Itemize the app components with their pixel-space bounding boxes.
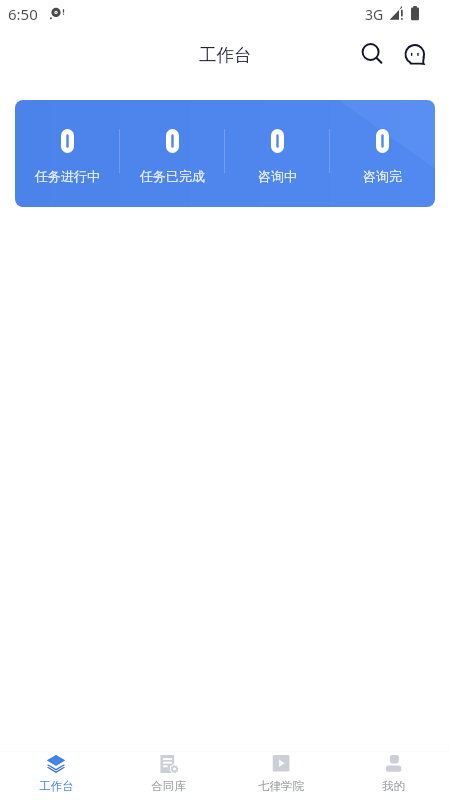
staticText: 我的 bbox=[382, 779, 405, 793]
staticText: 工作台 bbox=[39, 779, 74, 793]
button[interactable]: 合同库 bbox=[112, 752, 224, 800]
staticText: 咨询中 bbox=[258, 168, 297, 184]
button[interactable]: Messages bbox=[397, 36, 433, 72]
button[interactable]: 任务进行中 bbox=[15, 100, 435, 207]
button[interactable]: 我的 bbox=[337, 752, 450, 800]
button[interactable]: Search bbox=[352, 36, 388, 72]
button[interactable]: 七律学院 bbox=[224, 752, 337, 800]
staticText: 6:50 bbox=[8, 4, 38, 24]
staticText: 3G bbox=[365, 5, 384, 24]
staticText: 工作台 bbox=[199, 44, 252, 66]
staticText: 七律学院 bbox=[258, 779, 304, 793]
staticText: 咨询完 bbox=[363, 168, 402, 184]
button[interactable]: 工作台 bbox=[0, 752, 112, 800]
staticText: 任务已完成 bbox=[140, 168, 205, 184]
staticText: 合同库 bbox=[151, 779, 186, 793]
staticText: 任务进行中 bbox=[35, 168, 100, 184]
